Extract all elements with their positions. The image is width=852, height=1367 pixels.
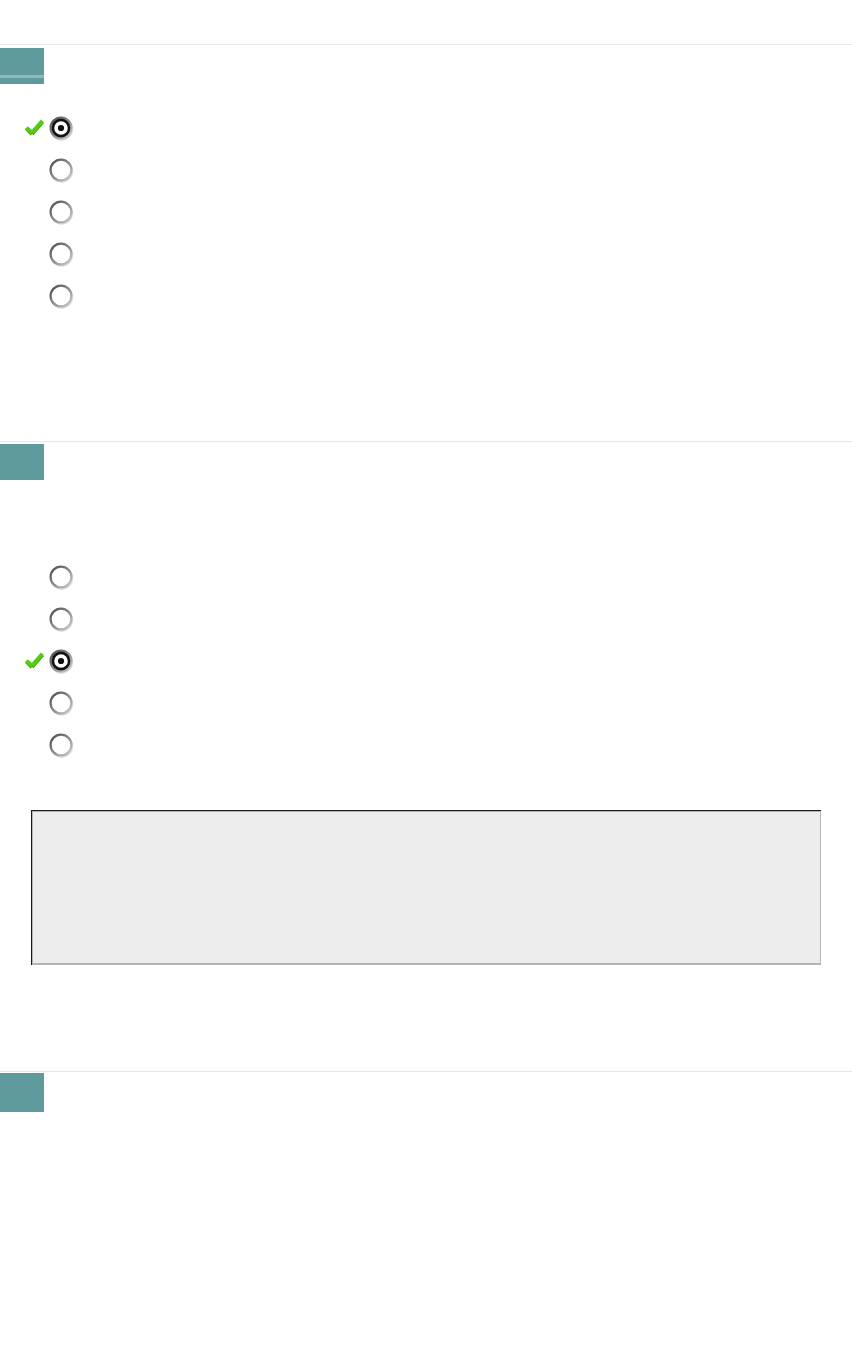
button[interactable]: Explanation — [31, 810, 821, 965]
button[interactable]: Selected option — [48, 115, 74, 141]
button[interactable]: Option — [48, 690, 74, 716]
button[interactable]: Selected option — [48, 648, 74, 674]
other: Correct answer — [24, 118, 44, 138]
button[interactable]: Option — [48, 606, 74, 632]
button[interactable]: Question marker — [0, 48, 44, 84]
button[interactable]: Option — [48, 157, 74, 183]
button[interactable]: Option — [48, 732, 74, 758]
button[interactable]: Option — [48, 283, 74, 309]
button[interactable]: Option — [48, 241, 74, 267]
button[interactable]: Option — [48, 199, 74, 225]
button[interactable]: Option — [48, 564, 74, 590]
other: Correct answer — [24, 651, 44, 671]
